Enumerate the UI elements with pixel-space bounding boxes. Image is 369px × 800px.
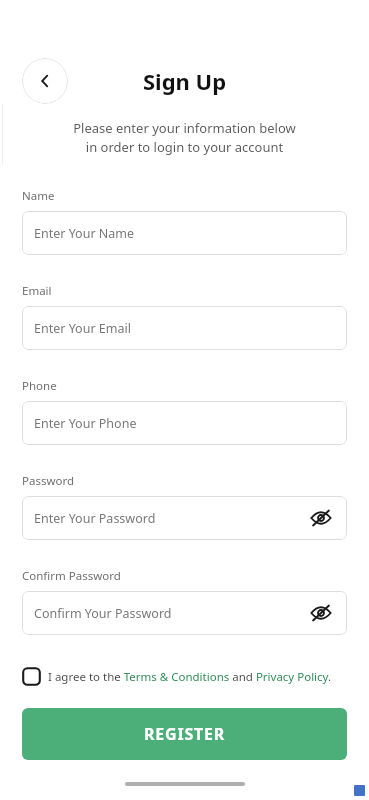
- staticText: Password: [22, 473, 75, 489]
- button[interactable]: Enter Your Name: [22, 211, 347, 255]
- staticText: Confirm Your Password: [34, 605, 307, 622]
- staticText: Confirm Password: [22, 568, 121, 584]
- button[interactable]: Back: [22, 58, 68, 104]
- button[interactable]: REGISTER: [22, 708, 347, 760]
- button[interactable]: Confirm Your Password: [22, 591, 347, 635]
- button[interactable]: Agree to terms checkbox: [22, 667, 41, 686]
- button[interactable]: Enter Your Phone: [22, 401, 347, 445]
- staticText: Sign Up: [143, 66, 227, 96]
- staticText: Enter Your Phone: [34, 415, 335, 432]
- button[interactable]: Enter Your Password: [22, 496, 347, 540]
- staticText: Enter Your Name: [34, 225, 335, 242]
- staticText: REGISTER: [144, 723, 226, 745]
- staticText: Please enter your information below in o…: [22, 119, 347, 156]
- staticText: Email: [22, 283, 52, 299]
- button[interactable]: Toggle password visibility: [307, 504, 335, 532]
- staticText: Enter Your Password: [34, 510, 307, 527]
- button[interactable]: Agree to terms checkbox: [22, 667, 347, 686]
- staticText: I agree to the Terms & Conditions and Pr…: [48, 669, 332, 685]
- button[interactable]: Toggle password visibility: [307, 599, 335, 627]
- staticText: Enter Your Email: [34, 320, 335, 337]
- staticText: Phone: [22, 378, 57, 394]
- staticText: Name: [22, 188, 55, 204]
- button[interactable]: Enter Your Email: [22, 306, 347, 350]
